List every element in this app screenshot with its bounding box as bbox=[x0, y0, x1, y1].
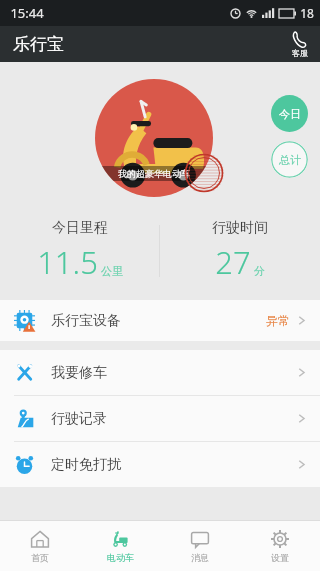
button[interactable]: 定时免打扰 bbox=[0, 442, 320, 487]
button[interactable]: 客服 bbox=[289, 31, 310, 58]
staticText: 异常 bbox=[266, 313, 290, 328]
staticText: 行驶记录 bbox=[51, 410, 107, 428]
staticText: 我的超豪华电动车 bbox=[118, 168, 190, 179]
staticText: 今日里程 bbox=[52, 219, 108, 237]
staticText: 电动车 bbox=[107, 552, 134, 563]
staticText: 乐行宝设备 bbox=[51, 312, 121, 330]
button[interactable]: 我要修车 bbox=[0, 350, 320, 395]
button[interactable]: 设置 bbox=[240, 521, 320, 571]
staticText: 总计 bbox=[279, 153, 301, 167]
button[interactable]: 电动车 bbox=[80, 521, 160, 571]
staticText: 消息 bbox=[191, 552, 209, 563]
staticText: 11.5 bbox=[37, 241, 98, 283]
button[interactable]: 乐行宝设备 bbox=[0, 300, 320, 341]
staticText: 乐行宝 bbox=[13, 34, 64, 55]
button[interactable]: 今日 bbox=[271, 95, 308, 132]
button[interactable]: 我的超豪华电动车 bbox=[95, 79, 213, 197]
staticText: 客服 bbox=[292, 48, 308, 58]
staticText: 定时免打扰 bbox=[51, 456, 121, 474]
staticText: 分 bbox=[254, 264, 265, 278]
staticText: 首页 bbox=[31, 552, 49, 563]
button[interactable]: 行驶时间 bbox=[160, 219, 320, 283]
staticText: 行驶时间 bbox=[212, 219, 268, 237]
staticText: 27 bbox=[215, 241, 251, 283]
staticText: 15:44 bbox=[10, 4, 44, 22]
button[interactable]: 总计 bbox=[271, 141, 308, 178]
staticText: 我要修车 bbox=[51, 364, 107, 382]
button[interactable]: 行驶记录 bbox=[0, 396, 320, 441]
staticText: 公里 bbox=[101, 264, 123, 278]
button[interactable]: 首页 bbox=[0, 521, 80, 571]
button[interactable]: 今日里程 bbox=[0, 219, 159, 283]
button[interactable]: 消息 bbox=[160, 521, 240, 571]
staticText: 18 bbox=[300, 5, 314, 21]
staticText: 设置 bbox=[271, 552, 289, 563]
staticText: 今日 bbox=[279, 107, 301, 121]
